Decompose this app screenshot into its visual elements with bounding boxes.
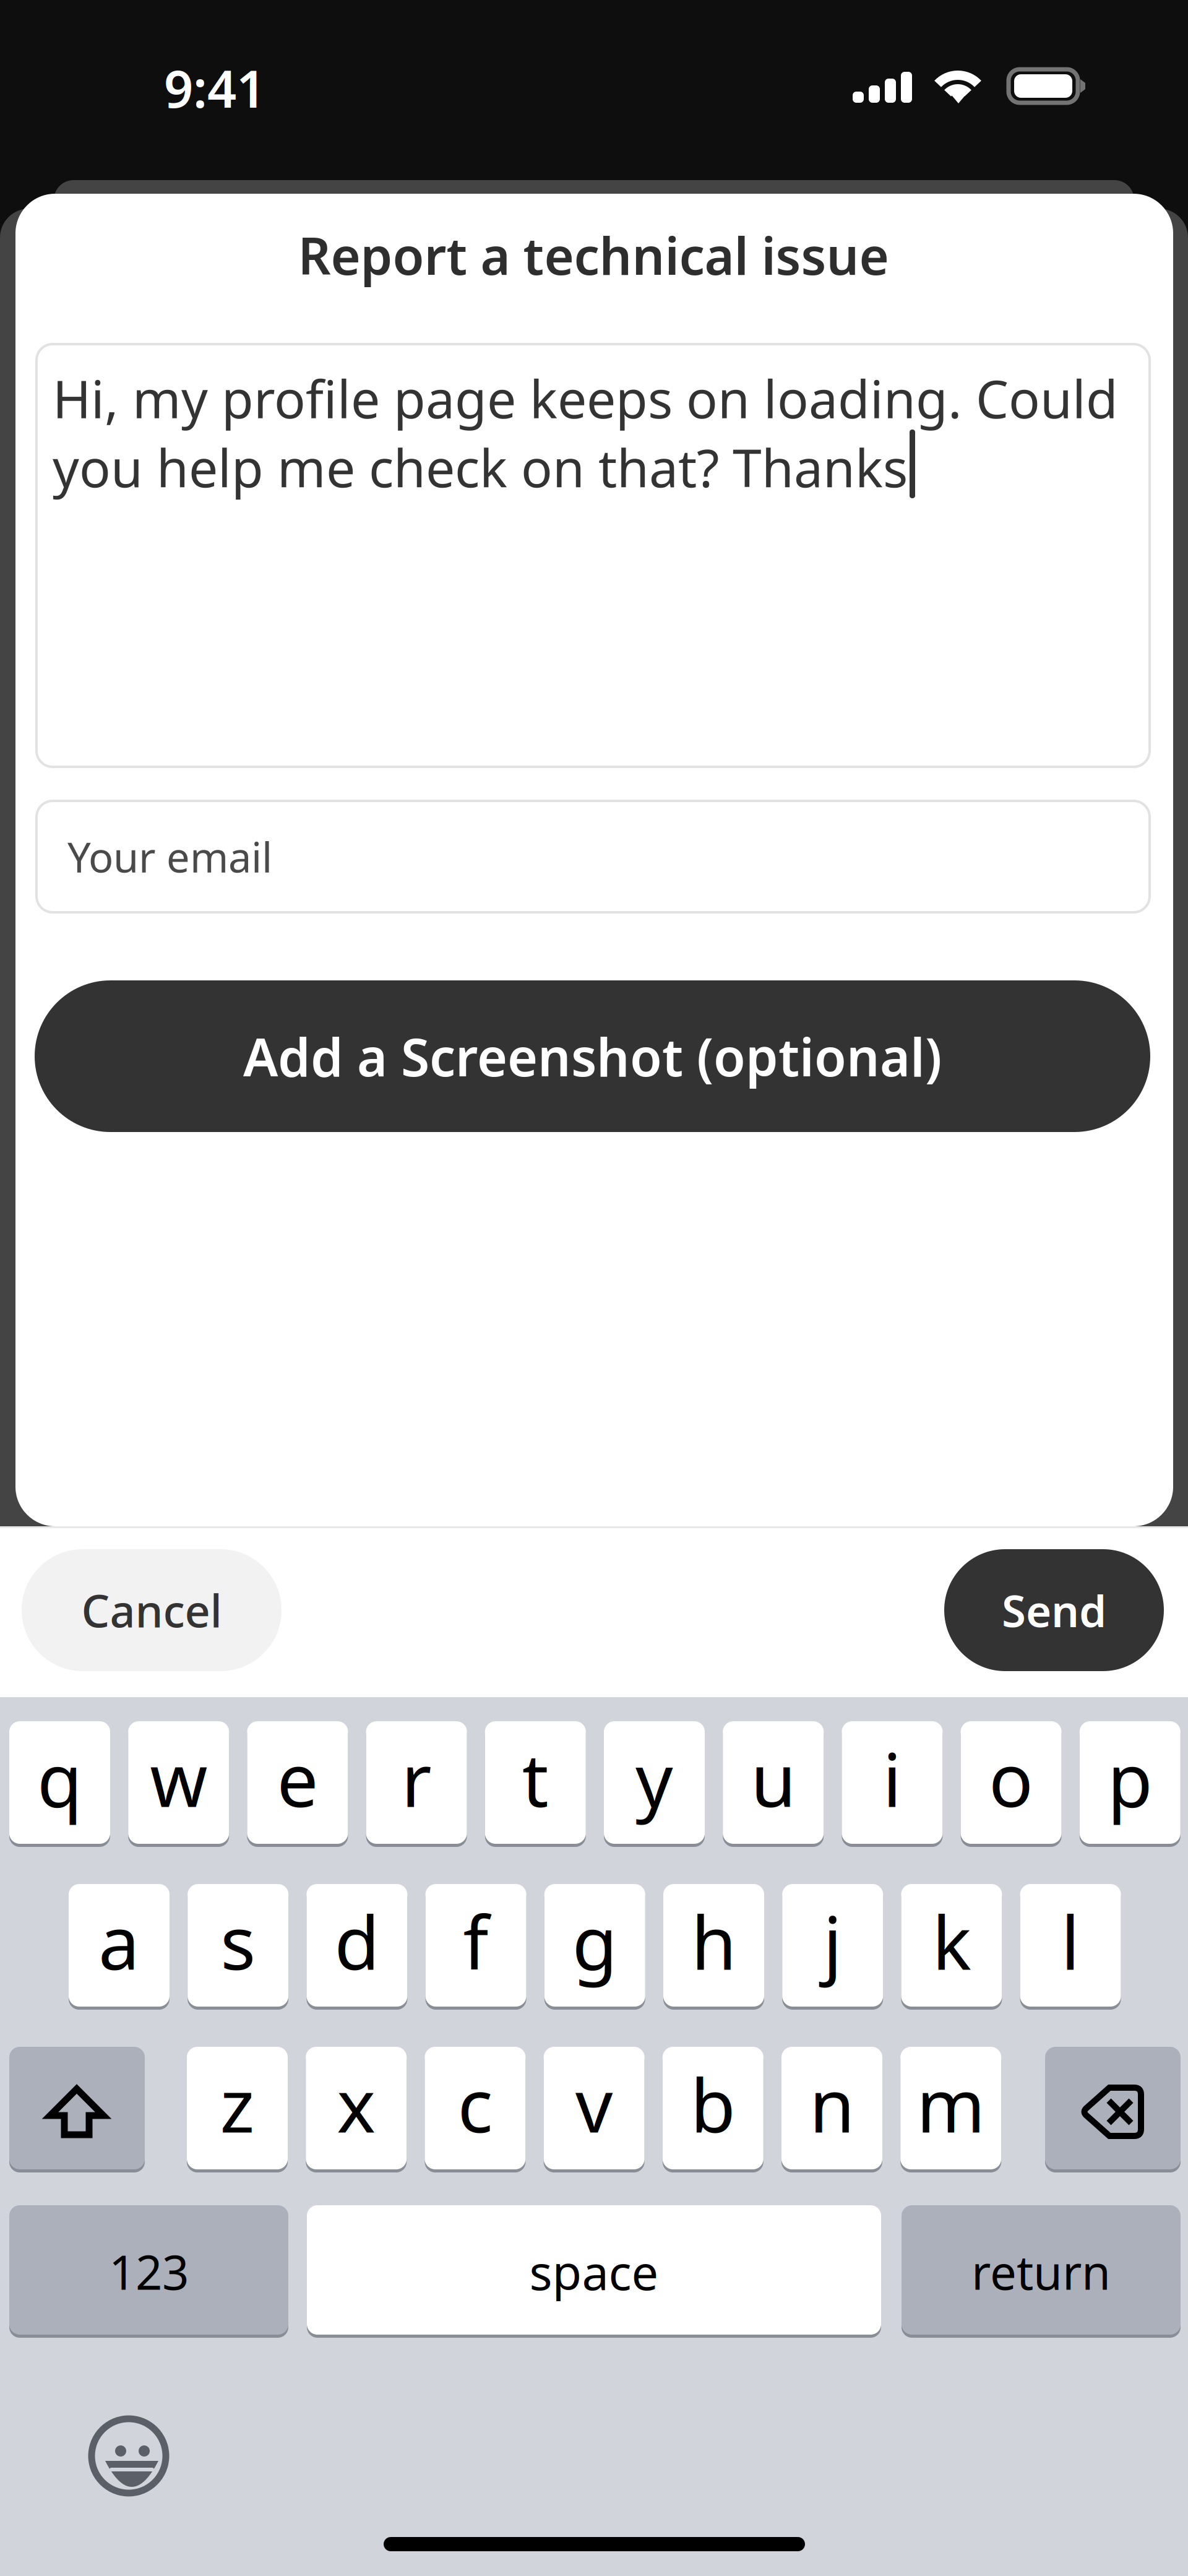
staticText: o — [989, 1730, 1033, 1827]
staticText: j — [823, 1893, 842, 1990]
staticText: m — [916, 2055, 985, 2153]
button[interactable]: m — [900, 2047, 1001, 2172]
button[interactable]: z — [187, 2047, 288, 2172]
staticText: u — [751, 1730, 796, 1827]
staticText: Hi, my profile page keeps on loading. Co… — [53, 364, 1118, 502]
button[interactable]: y — [604, 1721, 705, 1847]
staticText: b — [690, 2055, 736, 2153]
button[interactable]: space — [307, 2205, 881, 2338]
button[interactable]: d — [307, 1884, 407, 2010]
button[interactable]: Delete — [1045, 2047, 1181, 2172]
button[interactable]: t — [485, 1721, 586, 1847]
button[interactable]: Send — [944, 1549, 1164, 1671]
staticText: q — [37, 1730, 82, 1827]
button[interactable]: Shift — [9, 2047, 145, 2172]
button[interactable]: b — [663, 2047, 763, 2172]
staticText: l — [1061, 1893, 1080, 1990]
staticText: n — [809, 2055, 854, 2153]
staticText: p — [1107, 1730, 1153, 1827]
button[interactable]: Cancel — [22, 1549, 282, 1671]
staticText: a — [98, 1893, 140, 1990]
staticText: i — [883, 1730, 902, 1827]
staticText: y — [635, 1730, 673, 1827]
staticText: space — [529, 2240, 659, 2303]
staticText: 9:41 — [164, 54, 265, 122]
button[interactable]: h — [663, 1884, 764, 2010]
button[interactable]: q — [9, 1721, 110, 1847]
staticText: f — [463, 1893, 489, 1990]
staticText: d — [334, 1893, 380, 1990]
staticText: Add a Screenshot (optional) — [243, 1022, 942, 1091]
button[interactable]: s — [188, 1884, 288, 2010]
staticText: Your email — [67, 829, 272, 884]
staticText: t — [522, 1730, 549, 1827]
button[interactable]: x — [306, 2047, 407, 2172]
staticText: g — [572, 1893, 617, 1990]
button[interactable]: j — [782, 1884, 883, 2010]
button[interactable]: n — [781, 2047, 882, 2172]
staticText: z — [220, 2055, 255, 2153]
staticText: w — [150, 1730, 207, 1827]
button[interactable]: i — [842, 1721, 943, 1847]
staticText: r — [401, 1730, 432, 1827]
button[interactable]: o — [961, 1721, 1062, 1847]
button[interactable]: 123 — [9, 2205, 288, 2338]
button[interactable]: w — [128, 1721, 229, 1847]
staticText: Cancel — [81, 1581, 222, 1640]
staticText: x — [337, 2055, 376, 2153]
button[interactable]: e — [247, 1721, 348, 1847]
staticText: h — [691, 1893, 736, 1990]
button[interactable]: return — [902, 2205, 1181, 2338]
staticText: return — [971, 2240, 1111, 2303]
staticText: Send — [1002, 1581, 1106, 1639]
staticText: 123 — [109, 2240, 189, 2303]
button[interactable]: f — [425, 1884, 526, 2010]
button[interactable]: r — [366, 1721, 467, 1847]
staticText: c — [458, 2055, 493, 2153]
staticText: Report a technical issue — [298, 221, 889, 289]
button[interactable]: v — [544, 2047, 644, 2172]
button[interactable]: Emoji keyboard — [92, 2419, 166, 2493]
button[interactable]: p — [1080, 1721, 1180, 1847]
button[interactable]: g — [544, 1884, 645, 2010]
staticText: e — [277, 1730, 318, 1827]
button[interactable]: Add a Screenshot (optional) — [35, 980, 1150, 1132]
staticText: s — [220, 1893, 256, 1990]
staticText: k — [932, 1893, 971, 1990]
button[interactable]: a — [69, 1884, 170, 2010]
button[interactable]: k — [901, 1884, 1002, 2010]
staticText: v — [575, 2055, 613, 2153]
button[interactable]: c — [425, 2047, 526, 2172]
button[interactable]: l — [1020, 1884, 1121, 2010]
button[interactable]: u — [723, 1721, 824, 1847]
